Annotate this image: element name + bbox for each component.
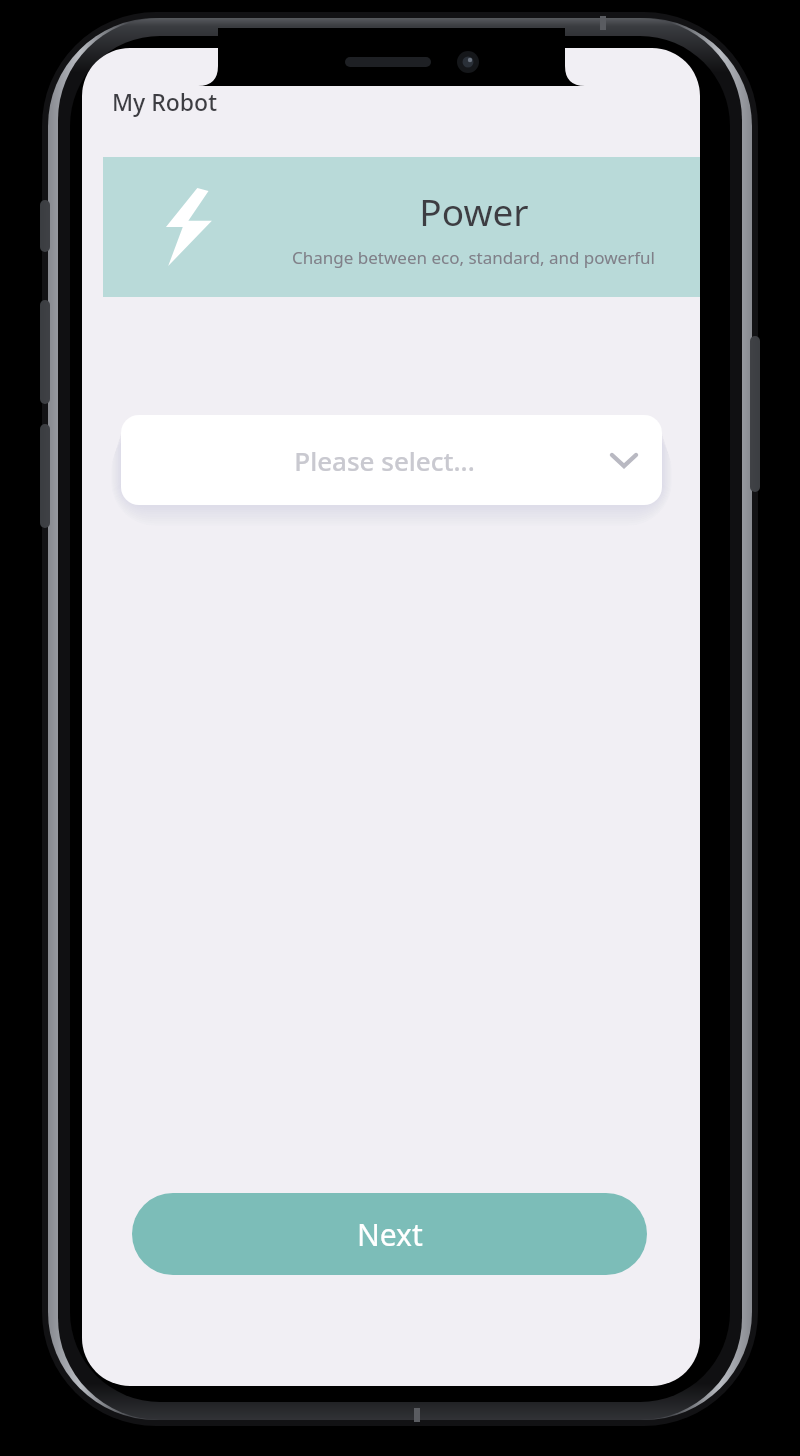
staticText: Please select... [165,443,604,478]
other: Power [157,188,213,266]
staticText: Power [419,186,529,236]
button[interactable]: Power [103,157,700,297]
button[interactable]: Next [132,1193,647,1275]
staticText: Next [357,1214,423,1255]
button[interactable]: Please select... [121,415,662,505]
staticText: Change between eco, standard, and powerf… [292,246,655,269]
staticText: My Robot [112,86,217,117]
